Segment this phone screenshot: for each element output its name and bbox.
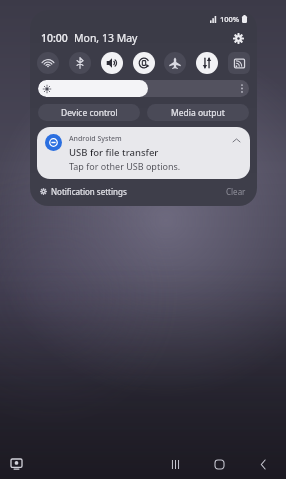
button[interactable]: Android System [37,127,250,179]
staticText: 100% [220,14,240,24]
button[interactable]: Wi-Fi [37,52,59,74]
button[interactable]: Mobile data [196,52,218,74]
staticText: Tap for other USB options. [69,160,181,172]
button[interactable]: Back [254,455,272,473]
button[interactable]: Settings [228,28,248,48]
button[interactable]: Airplane mode [164,52,186,74]
staticText: Clear [226,186,246,197]
staticText: Android System [69,134,122,144]
button[interactable]: Auto rotate [133,52,155,74]
button[interactable]: Device control [38,104,140,121]
button[interactable]: Sound [101,52,123,74]
button[interactable]: Smart view [228,52,250,74]
button[interactable]: Recents [166,455,184,473]
button[interactable] [38,80,249,97]
staticText: 10:00 [41,31,68,45]
button[interactable]: Media output [147,104,249,121]
staticText: Device control [61,107,118,119]
button[interactable]: Collapse [230,134,242,146]
staticText: Media output [171,107,225,119]
button[interactable]: Screenshot [7,455,25,473]
button[interactable]: Clear [226,186,246,197]
button[interactable]: Home [210,455,228,473]
staticText: Mon, 13 May [74,31,138,45]
button[interactable]: Notification settings [40,186,127,197]
staticText: USB for file transfer [69,146,159,159]
staticText: Notification settings [51,186,127,197]
button[interactable]: Bluetooth [69,52,91,74]
